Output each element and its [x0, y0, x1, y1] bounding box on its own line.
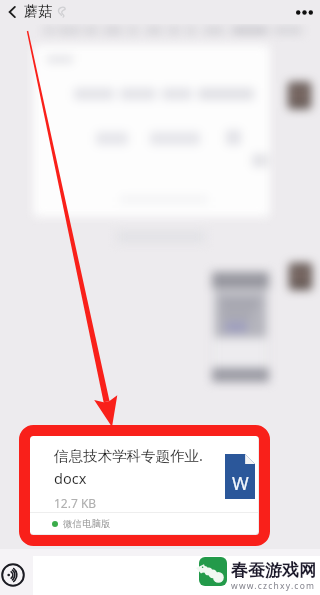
button[interactable]: 信息技术学科专题作业. docx — [30, 435, 258, 534]
staticText: www.czchxy.com — [231, 580, 316, 592]
staticText: 微信电脑版 — [63, 518, 111, 530]
button[interactable]: More options — [291, 0, 317, 24]
staticText: 春蚕游戏网 — [231, 560, 316, 581]
button[interactable] — [33, 556, 320, 595]
staticText: 蘑菇 — [24, 3, 52, 21]
staticText: 信息技术学科专题作业. docx — [54, 445, 203, 488]
staticText: W — [232, 471, 249, 496]
button[interactable]: Back — [0, 0, 24, 24]
button[interactable]: Voice message — [1, 563, 25, 587]
staticText: 12.7 KB — [54, 495, 97, 511]
